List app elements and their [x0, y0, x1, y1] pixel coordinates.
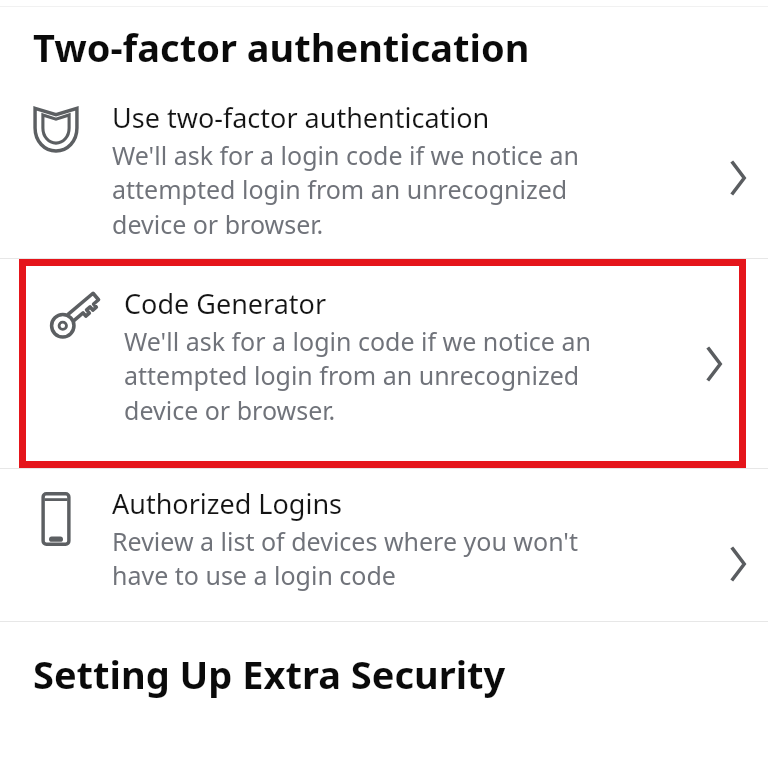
staticText: Authorized Logins	[112, 485, 343, 522]
staticText: We'll ask for a login code if we notice …	[112, 138, 579, 242]
staticText: Two-factor authentication	[33, 21, 530, 73]
staticText: Review a list of devices where you won't…	[112, 524, 578, 593]
staticText: Setting Up Extra Security	[33, 648, 506, 700]
staticText: We'll ask for a login code if we notice …	[124, 324, 591, 428]
staticText: Code Generator	[124, 285, 327, 322]
button[interactable]: Code Generator	[26, 266, 739, 461]
staticText: Use two-factor authentication	[112, 99, 490, 136]
button[interactable]: Authorized Logins	[0, 485, 768, 593]
button[interactable]: Use two-factor authentication	[0, 99, 768, 242]
